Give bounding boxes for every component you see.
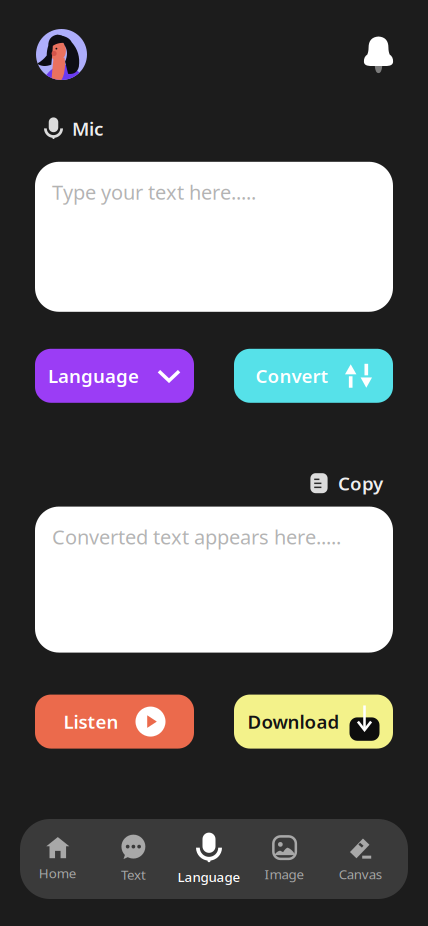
- button[interactable]: Canvas: [322, 819, 398, 899]
- button[interactable]: Notifications: [363, 35, 394, 74]
- staticText: Language: [48, 363, 139, 388]
- staticText: Canvas: [339, 865, 382, 883]
- button[interactable]: Convert: [234, 349, 393, 403]
- staticText: Image: [265, 865, 305, 883]
- staticText: Home: [39, 864, 77, 882]
- staticText: Text: [121, 866, 146, 883]
- button[interactable]: Profile: [36, 29, 87, 80]
- button[interactable]: Copy: [309, 471, 383, 496]
- staticText: Download: [247, 709, 339, 734]
- staticText: Type your text here.....: [52, 179, 256, 205]
- button[interactable]: Home: [20, 819, 96, 899]
- staticText: Listen: [63, 709, 118, 734]
- button[interactable]: Listen: [35, 695, 194, 749]
- staticText: Converted text appears here.....: [52, 524, 341, 550]
- staticText: Convert: [255, 363, 328, 388]
- button[interactable]: Text: [96, 819, 171, 899]
- button[interactable]: Image: [247, 819, 322, 899]
- staticText: Language: [177, 868, 240, 886]
- button[interactable]: Language: [35, 349, 194, 403]
- button[interactable]: Language: [171, 819, 247, 899]
- staticText: Mic: [72, 116, 103, 141]
- button[interactable]: Download: [234, 695, 393, 749]
- staticText: Copy: [338, 471, 383, 496]
